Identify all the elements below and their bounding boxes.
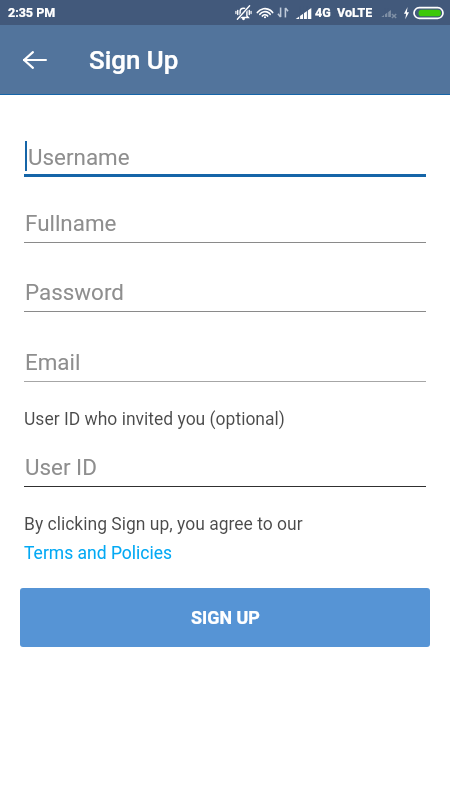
- staticText: Username: [28, 144, 130, 170]
- button[interactable]: Password: [24, 276, 426, 312]
- staticText: Password: [25, 279, 124, 305]
- button[interactable]: Back: [12, 37, 58, 83]
- staticText: Fullname: [25, 210, 117, 236]
- staticText: VoLTE: [337, 5, 373, 20]
- button[interactable]: SIGN UP: [20, 588, 430, 647]
- staticText: 4G: [315, 5, 331, 20]
- button[interactable]: User ID: [24, 451, 426, 487]
- button[interactable]: Email: [24, 346, 426, 382]
- staticText: 2:35 PM: [8, 5, 56, 20]
- staticText: By clicking Sign up, you agree to our: [24, 514, 303, 535]
- staticText: SIGN UP: [191, 607, 260, 628]
- staticText: User ID: [25, 454, 97, 480]
- button[interactable]: Fullname: [24, 207, 426, 243]
- button[interactable]: Terms and Policies: [24, 543, 173, 564]
- staticText: Email: [25, 349, 81, 375]
- staticText: User ID who invited you (optional): [24, 409, 285, 430]
- button[interactable]: Username: [24, 141, 426, 177]
- staticText: Sign Up: [89, 45, 179, 75]
